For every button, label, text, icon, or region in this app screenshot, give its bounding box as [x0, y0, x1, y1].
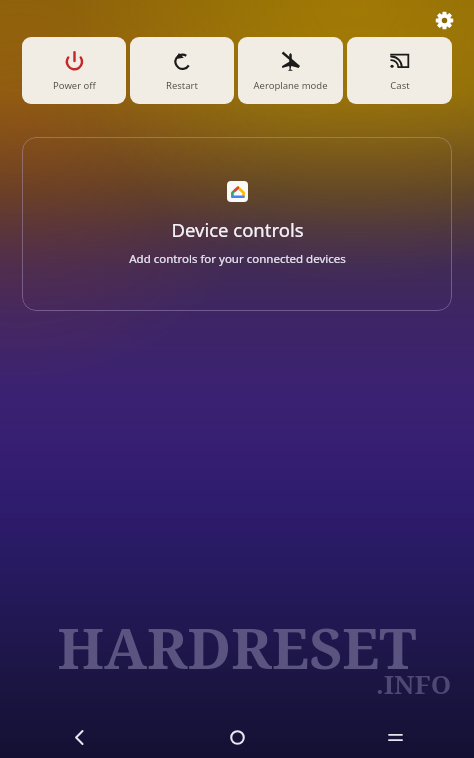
button[interactable]: Cast [347, 37, 452, 104]
staticText: Device controls [171, 217, 304, 242]
button[interactable]: Back [0, 716, 158, 758]
staticText: HARDRESET [57, 608, 417, 686]
staticText: Cast [390, 79, 410, 92]
button[interactable]: Settings [428, 4, 460, 36]
button[interactable]: Home [158, 716, 316, 758]
button[interactable]: Power off [22, 37, 126, 104]
staticText: Aeroplane mode [253, 79, 328, 92]
button[interactable]: Device controls [22, 137, 452, 311]
staticText: Power off [53, 79, 96, 92]
staticText: .INFO [376, 666, 452, 701]
staticText: Restart [166, 79, 198, 92]
button[interactable]: Aeroplane mode [238, 37, 343, 104]
button[interactable]: Recents [316, 716, 474, 758]
button[interactable]: Restart [130, 37, 234, 104]
staticText: Add controls for your connected devices [129, 251, 346, 267]
